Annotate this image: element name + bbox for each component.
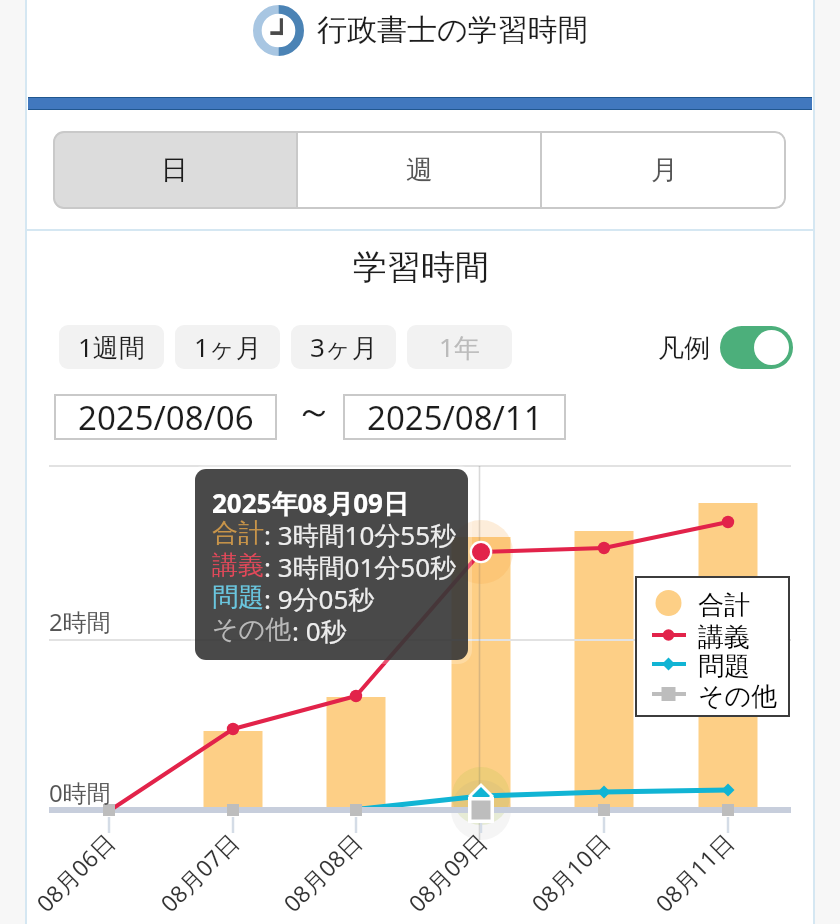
staticText: 問題 [698,650,750,683]
staticText: 2時間 [49,605,111,638]
staticText: 2025/08/11 [367,395,543,440]
staticText: : 3時間10分55秒 [264,517,457,549]
staticText: 日 [161,153,188,187]
staticText: : 9分05秒 [264,581,375,613]
staticText: 2025年08月09日 [212,485,409,517]
staticText: 1年 [439,329,480,365]
staticText: 講義 [212,549,264,581]
button[interactable]: 3ヶ月 [291,325,396,369]
staticText: 2025/08/06 [78,395,254,440]
button[interactable]: 2025/08/06 [54,394,277,440]
button[interactable]: 日 [53,131,296,209]
staticText: 3ヶ月 [310,329,378,365]
staticText: 08月07日 [153,826,244,917]
button[interactable]: 合計 [635,576,790,717]
staticText: その他 [212,613,292,645]
staticText: 08月09日 [401,826,492,917]
button[interactable]: 1年 [407,325,512,369]
staticText: 08月08日 [276,826,367,917]
staticText: : 0秒 [292,613,347,645]
staticText: 合計 [212,517,264,549]
button[interactable]: 週 [298,131,540,209]
staticText: 月 [651,153,678,187]
button[interactable]: 2025/08/11 [343,394,566,440]
staticText: 合計 [698,589,750,622]
button[interactable]: 1ヶ月 [175,325,280,369]
staticText: ～ [295,387,333,435]
staticText: 行政書士の学習時間 [317,11,588,49]
staticText: 問題 [212,581,264,613]
staticText: 凡例 [658,332,710,365]
staticText: その他 [698,680,778,713]
staticText: 08月11日 [648,826,739,917]
button[interactable]: 1週間 [59,325,164,369]
staticText: 週 [406,153,433,187]
staticText: 08月10日 [524,826,615,917]
staticText: 08月06日 [29,826,120,917]
button[interactable]: 凡例の表示切替 [720,326,793,369]
staticText: 0時間 [49,776,111,809]
staticText: 1週間 [78,329,145,365]
button[interactable]: 月 [542,131,786,209]
staticText: : 3時間01分50秒 [264,549,457,581]
staticText: 講義 [698,621,750,654]
staticText: 学習時間 [353,246,489,289]
staticText: 1ヶ月 [194,329,262,365]
